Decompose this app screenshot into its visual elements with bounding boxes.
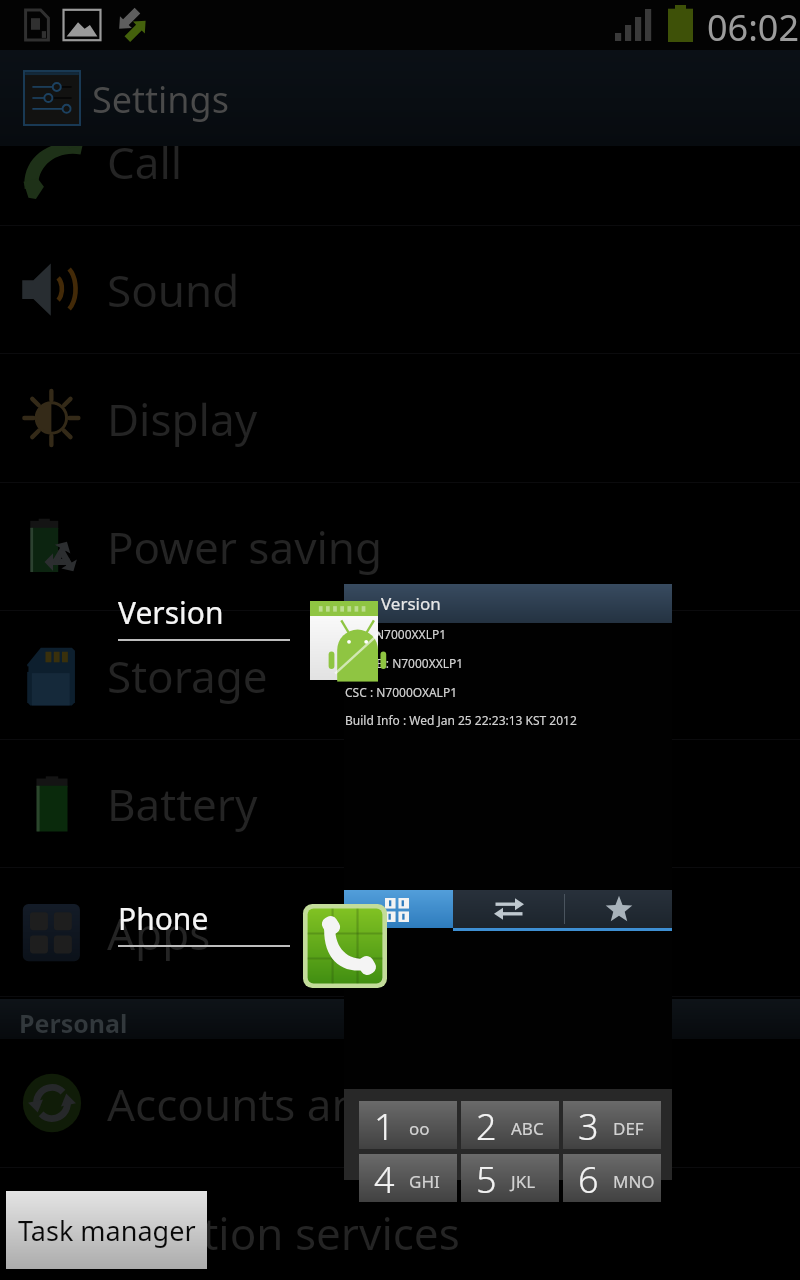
staticText: Sound [107, 260, 240, 320]
staticText: Location services [107, 1203, 460, 1263]
button[interactable]: 6 [563, 1154, 661, 1202]
button[interactable]: Version app preview [344, 584, 672, 890]
staticText: Phone [118, 898, 209, 939]
staticText: 5 [476, 1155, 497, 1203]
staticText: 1 [374, 1102, 395, 1150]
staticText: Task manager [18, 1212, 196, 1249]
button[interactable]: 2 [461, 1101, 559, 1149]
staticText: JKL [511, 1170, 536, 1193]
button[interactable]: Storage [0, 611, 800, 740]
staticText: Power saving [107, 517, 383, 577]
button[interactable]: Display [0, 354, 800, 483]
button[interactable]: Settings [0, 50, 800, 146]
button[interactable]: Call [0, 97, 800, 226]
staticText: DEF [613, 1117, 644, 1140]
button[interactable]: Version [118, 592, 290, 641]
staticText: 4 [374, 1155, 395, 1203]
staticText: CSC : N7000OXALP1 [345, 684, 458, 700]
button[interactable]: Power saving [0, 482, 800, 611]
staticText: Battery [107, 774, 258, 834]
button[interactable]: Sound [0, 225, 800, 354]
button[interactable]: Apps [0, 868, 800, 997]
staticText: Accounts and sync [107, 1074, 489, 1134]
button[interactable]: 5 [461, 1154, 559, 1202]
button[interactable]: 1 [359, 1101, 457, 1149]
staticText: E : N7000XXLP1 [376, 655, 464, 671]
staticText: 2 [476, 1102, 497, 1150]
staticText: Build Info : Wed Jan 25 22:23:13 KST 201… [345, 712, 577, 728]
button[interactable]: 3 [563, 1101, 661, 1149]
button[interactable]: Dialer preview [344, 1089, 672, 1180]
staticText: oo [409, 1117, 430, 1140]
staticText: 06:02 [707, 3, 800, 52]
staticText: Display [107, 389, 258, 449]
staticText: Version [381, 592, 441, 615]
button[interactable]: Task manager [6, 1191, 207, 1269]
staticText: Version [118, 592, 224, 633]
staticText: Settings [92, 75, 229, 124]
button[interactable]: Phone app preview [344, 890, 672, 1089]
button[interactable]: Keypad [344, 890, 453, 928]
staticText: Storage [107, 646, 268, 706]
staticText: MNO [613, 1170, 655, 1193]
staticText: 3 [578, 1102, 599, 1150]
button[interactable]: Phone [118, 898, 290, 947]
staticText: 6 [578, 1155, 599, 1203]
button[interactable]: Accounts and sync [0, 1039, 800, 1168]
button[interactable]: 4 [359, 1154, 457, 1202]
staticText: N7000XXLP1 [375, 626, 447, 642]
button[interactable]: Location services [0, 1168, 800, 1280]
staticText: GHI [409, 1170, 440, 1193]
staticText: Call [107, 132, 183, 192]
staticText: Apps [107, 903, 211, 963]
button[interactable]: Logs [453, 890, 565, 928]
staticText: ABC [511, 1117, 544, 1140]
staticText: Personal [19, 1006, 128, 1040]
button[interactable]: Battery [0, 739, 800, 868]
button[interactable]: Favourites [565, 890, 672, 928]
